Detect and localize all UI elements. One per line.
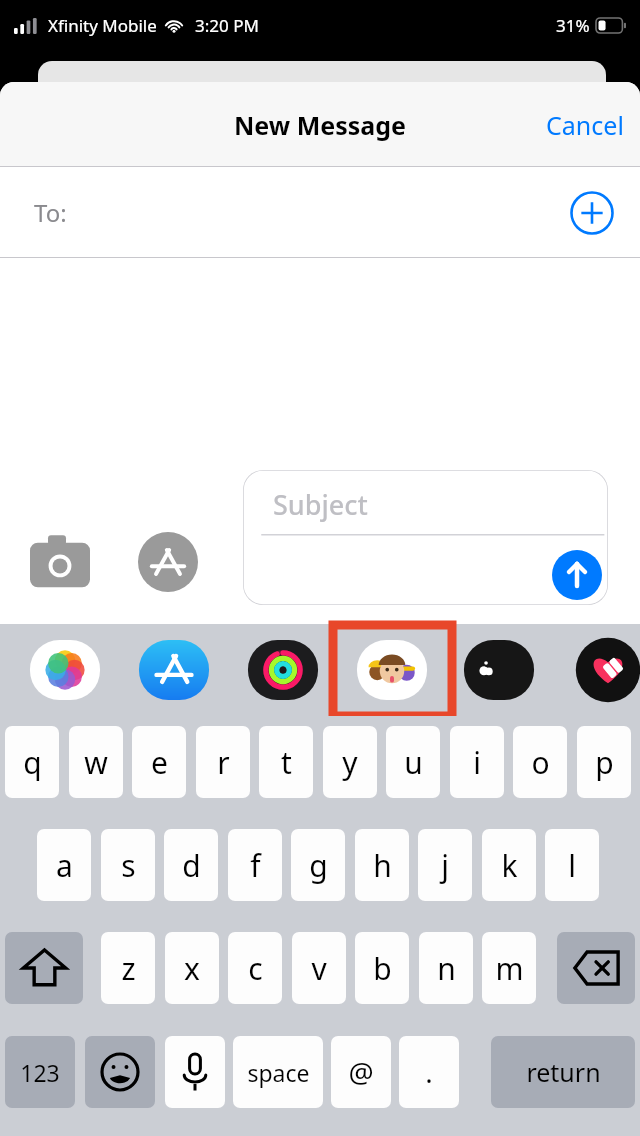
button[interactable]: t [259,726,313,798]
staticText: b [373,948,392,989]
staticText: y [342,742,358,783]
button[interactable]: r [196,726,250,798]
button[interactable]: Photos [30,635,100,705]
button[interactable]: j [418,829,472,901]
button[interactable]: Subject [243,470,608,605]
staticText: Cancel [546,108,624,142]
button[interactable]: @ [331,1036,391,1108]
staticText: v [311,948,327,989]
button[interactable]: p [577,726,631,798]
button[interactable]: q [5,726,59,798]
staticText: p [595,742,614,783]
staticText: k [501,845,518,886]
button[interactable]: e [132,726,186,798]
button[interactable]: Add contact [570,191,614,235]
staticText: h [373,845,392,886]
staticText: i [473,742,481,783]
button[interactable]: 123 [5,1036,75,1108]
button[interactable]: return [491,1036,635,1108]
button[interactable]: Camera [30,532,90,592]
button[interactable]: u [386,726,440,798]
staticText: Xfinity Mobile [48,14,157,37]
staticText: @ [348,1053,374,1091]
staticText: 31% [556,14,590,37]
button[interactable]: z [101,932,155,1004]
button[interactable]: key [85,1036,155,1108]
staticText: space [247,1057,310,1088]
button[interactable]: Send [552,550,602,600]
button[interactable]: s [101,829,155,901]
button[interactable]: f [228,829,282,901]
staticText: s [121,845,136,886]
staticText: c [248,948,263,989]
button[interactable]: Fitness [248,635,318,705]
button[interactable]: h [355,829,409,901]
staticText: e [151,742,168,783]
button[interactable]: d [164,829,218,901]
button[interactable]: n [419,932,473,1004]
staticText: 123 [20,1057,60,1088]
button[interactable]: key [5,932,83,1004]
staticText: l [568,845,576,886]
button[interactable]: g [291,829,345,901]
staticText: Subject [273,486,368,523]
button[interactable]: y [323,726,377,798]
button[interactable]: App Store [138,532,198,592]
staticText: f [250,845,261,886]
button[interactable]: . [399,1036,459,1108]
button[interactable]: l [545,829,599,901]
staticText: r [217,742,230,783]
button[interactable]: x [165,932,219,1004]
staticText: j [441,845,449,886]
button[interactable]: Cancel [530,96,640,154]
button[interactable]: key [165,1036,225,1108]
button[interactable]: b [355,932,409,1004]
button[interactable]: Health [573,635,640,705]
button[interactable]: App Store [139,635,209,705]
staticText: g [309,845,328,886]
button[interactable]: m [482,932,536,1004]
staticText: w [84,742,108,783]
staticText: m [495,948,524,989]
staticText: d [182,845,201,886]
staticText: z [121,948,136,989]
staticText: . [425,1053,433,1091]
staticText: x [184,948,200,989]
staticText: return [526,1055,601,1089]
staticText: New Message [234,108,406,142]
button[interactable]: k [482,829,536,901]
staticText: To: [34,196,67,229]
button[interactable]: a [37,829,91,901]
button[interactable]: Apple Pay [464,635,534,705]
button[interactable]: i [450,726,504,798]
staticText: a [56,845,73,886]
staticText: u [404,742,423,783]
staticText: n [437,948,456,989]
button[interactable]: c [228,932,282,1004]
button[interactable]: key [557,932,635,1004]
button[interactable]: o [513,726,567,798]
staticText: 3:20 PM [195,14,259,37]
staticText: o [531,742,550,783]
button[interactable]: Memoji [357,635,427,705]
staticText: q [23,742,42,783]
button[interactable]: v [292,932,346,1004]
button[interactable]: space [233,1036,323,1108]
button[interactable]: w [69,726,123,798]
staticText: t [281,742,292,783]
